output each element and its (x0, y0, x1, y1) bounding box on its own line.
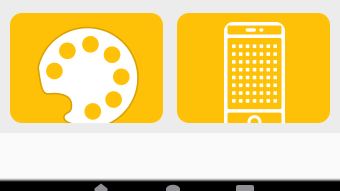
button[interactable]: Home (65, 182, 137, 191)
button[interactable]: Library (209, 182, 281, 191)
button[interactable] (10, 13, 163, 123)
button[interactable] (177, 13, 330, 123)
button[interactable]: Favourites (137, 182, 209, 191)
